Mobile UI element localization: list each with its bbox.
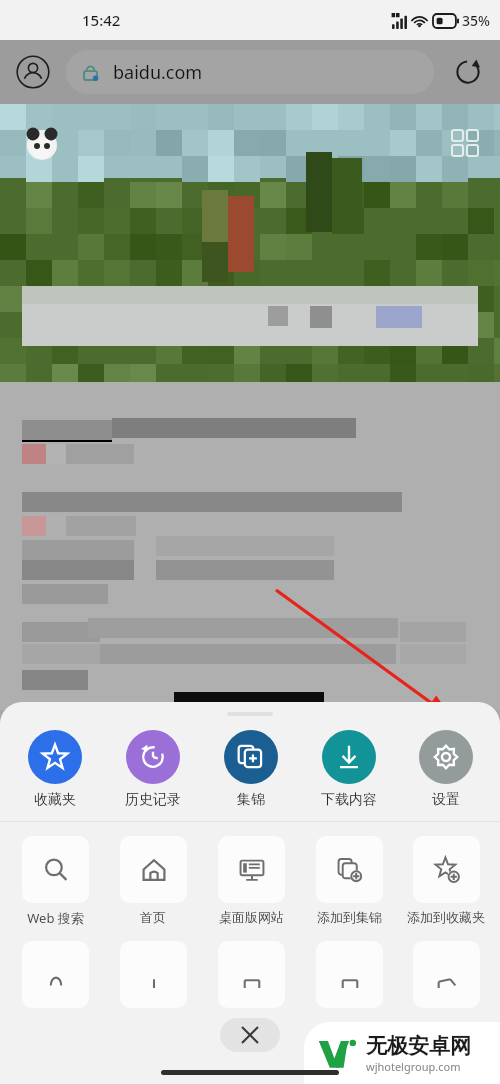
- button[interactable]: Profile: [10, 49, 56, 95]
- button[interactable]: 设置: [398, 730, 494, 809]
- staticText: 下载内容: [321, 791, 377, 809]
- button[interactable]: 下载内容: [300, 730, 398, 809]
- staticText: 历史记录: [125, 791, 181, 809]
- button[interactable]: 添加到集锦: [300, 836, 398, 925]
- button[interactable]: 添加到收藏夹: [398, 836, 494, 925]
- staticText: 35%: [462, 11, 490, 30]
- button[interactable]: baidu.com: [66, 50, 434, 94]
- staticText: 添加到集锦: [317, 909, 382, 925]
- staticText: 设置: [432, 791, 460, 809]
- staticText: 桌面版网站: [219, 909, 284, 925]
- staticText: wjhotelgroup.com: [366, 1059, 461, 1074]
- button[interactable]: 桌面版网站: [202, 836, 300, 925]
- button[interactable]: 收藏夹: [6, 730, 104, 809]
- staticText: 更改菜单: [436, 1024, 488, 1040]
- staticText: Web 搜索: [27, 909, 84, 927]
- staticText: 无极安卓网: [366, 1033, 471, 1059]
- staticText: 15:42: [82, 10, 121, 30]
- staticText: 添加到收藏夹: [407, 909, 485, 925]
- staticText: 首页: [140, 909, 166, 925]
- button[interactable]: 历史记录: [104, 730, 202, 809]
- staticText: 收藏夹: [34, 791, 76, 809]
- button[interactable]: Reload: [446, 50, 490, 94]
- staticText: 集锦: [237, 791, 265, 809]
- button[interactable]: Web 搜索: [6, 836, 104, 927]
- button[interactable]: 集锦: [202, 730, 300, 809]
- staticText: baidu.com: [113, 60, 203, 85]
- button[interactable]: Close: [220, 1018, 280, 1052]
- button[interactable]: 首页: [104, 836, 202, 925]
